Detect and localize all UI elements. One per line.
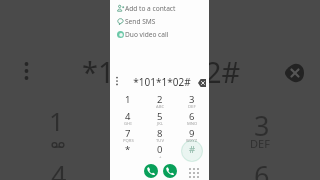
staticText: 9 xyxy=(189,127,195,140)
button[interactable]: * xyxy=(116,139,140,163)
button[interactable]: 2 xyxy=(148,89,172,113)
staticText: 2# xyxy=(205,52,241,91)
staticText: 0 xyxy=(157,143,163,156)
staticText: 5 xyxy=(157,110,163,123)
staticText: *101*1*02# xyxy=(133,75,191,89)
staticText: DEF xyxy=(250,136,270,151)
button[interactable]: 1 xyxy=(116,89,140,113)
staticText: 1 xyxy=(49,103,64,138)
button[interactable]: 8 xyxy=(148,123,172,147)
staticText: DEF xyxy=(188,104,196,110)
staticText: PQRS xyxy=(123,138,134,144)
button[interactable]: Call xyxy=(163,164,177,178)
button[interactable]: 6 xyxy=(180,106,204,130)
button[interactable]: Add to a contact xyxy=(110,2,209,15)
staticText: + xyxy=(159,154,162,160)
button[interactable]: 3 xyxy=(180,89,204,113)
staticText: TUV xyxy=(156,138,164,144)
button[interactable]: 9 xyxy=(180,123,204,147)
button[interactable]: Keypad xyxy=(186,165,201,180)
staticText: GHI xyxy=(124,121,132,127)
staticText: MNO xyxy=(187,121,198,127)
staticText: WXYZ xyxy=(186,138,198,144)
button[interactable]: Send SMS xyxy=(110,15,209,28)
button[interactable]: 5 xyxy=(148,106,172,130)
staticText: Add to a contact xyxy=(125,4,176,13)
button[interactable]: 7 xyxy=(116,123,140,147)
staticText: 2 xyxy=(157,93,163,106)
staticText: 4 xyxy=(125,110,131,123)
button[interactable]: More options xyxy=(110,74,124,88)
staticText: 3 xyxy=(254,107,270,144)
staticText: 8 xyxy=(157,127,163,140)
staticText: 7 xyxy=(125,127,131,140)
button[interactable]: # xyxy=(180,139,204,163)
button[interactable]: Duo video call xyxy=(110,28,209,41)
staticText: 4 xyxy=(51,157,67,180)
button[interactable]: Call xyxy=(144,164,158,178)
button[interactable]: 4 xyxy=(116,106,140,130)
staticText: 6 xyxy=(189,110,195,123)
staticText: # xyxy=(189,143,196,156)
staticText: ABC xyxy=(156,104,165,110)
staticText: 6 xyxy=(254,157,270,180)
staticText: Duo video call xyxy=(125,30,169,39)
staticText: 1 xyxy=(125,93,131,106)
staticText: * xyxy=(125,143,131,156)
button[interactable]: 0 xyxy=(148,139,172,163)
staticText: 3 xyxy=(189,93,195,106)
staticText: Send SMS xyxy=(125,17,156,26)
button[interactable]: Backspace xyxy=(196,77,208,89)
staticText: *1 xyxy=(82,52,115,91)
staticText: JKL xyxy=(157,121,163,127)
